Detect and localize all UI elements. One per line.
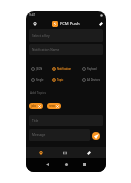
staticText: Add Topics [30, 91, 47, 95]
button[interactable]: Notifications [36, 147, 45, 158]
button[interactable]: All Devices [82, 76, 100, 84]
button[interactable]: Location [30, 19, 39, 28]
button[interactable]: Compose [84, 147, 93, 158]
staticText: Payload [87, 67, 97, 71]
button[interactable]: jobs [29, 103, 43, 109]
button[interactable]: Home [62, 160, 70, 168]
button[interactable]: Notification Name [29, 44, 103, 55]
staticText: Title [32, 119, 39, 123]
button[interactable]: news [47, 103, 61, 109]
staticText: jobs [31, 104, 37, 108]
button[interactable]: Notification [52, 65, 72, 73]
button[interactable]: Single [31, 76, 44, 84]
staticText: Notification Name [32, 48, 60, 52]
staticText: Message [32, 133, 46, 137]
staticText: FCM Push [60, 21, 80, 27]
button[interactable]: Back [43, 160, 51, 168]
staticText: news [49, 104, 56, 108]
button[interactable]: Send [92, 132, 100, 140]
button[interactable]: Recents [80, 160, 88, 168]
staticText: All Devices [87, 78, 100, 82]
button[interactable]: Topic [52, 76, 64, 84]
staticText: Topic [57, 78, 64, 82]
staticText: Select a Key [32, 34, 50, 38]
staticText: Single [36, 78, 44, 82]
button[interactable]: Message [29, 129, 90, 141]
staticText: Notification [57, 67, 72, 71]
button[interactable]: Title [29, 115, 103, 126]
button[interactable]: Select a Key [29, 29, 103, 42]
staticText: JSON [36, 67, 43, 71]
button[interactable]: Payload [82, 65, 97, 73]
button[interactable]: Devices [60, 147, 69, 158]
button[interactable]: Edit [96, 19, 105, 28]
button[interactable]: JSON [31, 65, 43, 73]
staticText: 9:41 [29, 13, 36, 17]
